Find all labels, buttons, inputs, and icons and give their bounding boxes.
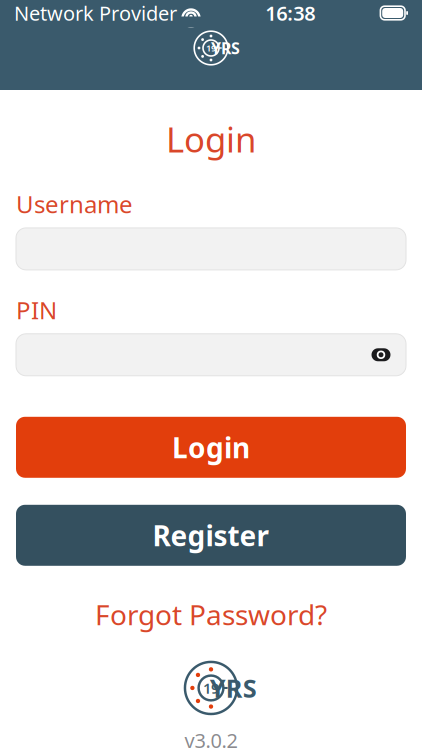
button[interactable]: Register — [16, 505, 406, 566]
button[interactable]: Forgot Password? — [16, 590, 406, 639]
staticText: Login — [166, 116, 256, 162]
staticText: YRS — [211, 37, 240, 59]
staticText: v3.0.2 — [184, 727, 237, 750]
staticText: 16:38 — [265, 0, 315, 26]
staticText: Network Provider — [14, 0, 177, 26]
staticText: Forgot Password? — [95, 596, 327, 633]
staticText: Register — [152, 517, 269, 554]
staticText: Login — [172, 429, 250, 466]
staticText: PIN — [16, 294, 57, 326]
staticText: 19 — [206, 42, 216, 54]
button[interactable]: Login — [16, 417, 406, 478]
staticText: YRS — [210, 671, 257, 705]
staticText: 19 — [203, 678, 219, 698]
staticText: Username — [16, 188, 133, 220]
